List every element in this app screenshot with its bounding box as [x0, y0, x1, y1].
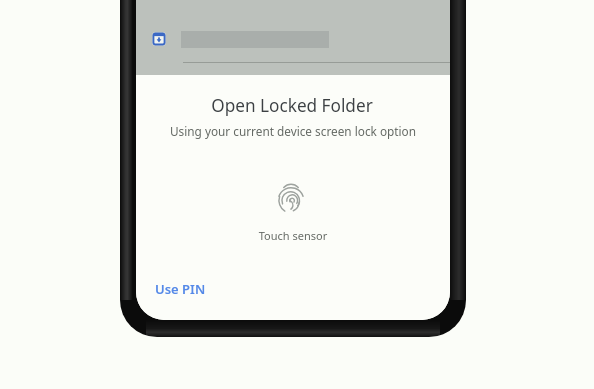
staticText: Using your current device screen lock op… [136, 123, 450, 139]
staticText: Open Locked Folder [136, 94, 449, 117]
button[interactable]: Download [151, 31, 167, 47]
staticText: Touch sensor [136, 228, 450, 243]
button[interactable]: Use PIN [145, 272, 216, 306]
button[interactable]: Fingerprint sensor [278, 182, 304, 215]
staticText: Use PIN [155, 280, 206, 298]
